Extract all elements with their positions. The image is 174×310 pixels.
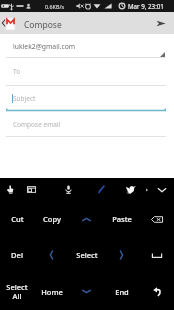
- button[interactable]: Select text: [1, 178, 19, 201]
- button[interactable]: Subject: [0, 86, 174, 111]
- button[interactable]: Copy: [34, 201, 69, 237]
- staticText: End: [115, 287, 129, 297]
- button[interactable]: Backspace: [139, 201, 174, 237]
- button[interactable]: Move right: [104, 237, 139, 273]
- button[interactable]: Move left: [34, 237, 69, 273]
- button[interactable]: Select: [69, 237, 104, 273]
- button[interactable]: Enter: [139, 273, 174, 310]
- staticText: luklek2@gmail.com: [13, 42, 76, 51]
- staticText: Compose email: [13, 120, 61, 129]
- button[interactable]: Navigate up: [0, 12, 7, 34]
- staticText: Select: [76, 250, 98, 260]
- button[interactable]: Handwriting: [91, 178, 109, 201]
- button[interactable]: Space: [139, 237, 174, 273]
- staticText: Cut: [11, 214, 24, 224]
- staticText: Mar 9, 23:01: [128, 2, 164, 10]
- button[interactable]: Select All: [0, 273, 34, 310]
- button[interactable]: Hide keyboard: [152, 178, 171, 201]
- staticText: Compose: [24, 19, 62, 31]
- staticText: Del: [11, 250, 23, 260]
- button[interactable]: Voice input: [59, 178, 77, 201]
- button[interactable]: Paste: [104, 201, 139, 237]
- button[interactable]: End: [104, 273, 139, 310]
- button[interactable]: Page down: [69, 273, 104, 310]
- button[interactable]: Clipboard: [22, 178, 40, 201]
- staticText: Select All: [6, 282, 28, 301]
- button[interactable]: luklek2@gmail.com: [0, 36, 174, 57]
- staticText: 0.6KB/s: [45, 3, 65, 10]
- button[interactable]: Cut: [0, 201, 34, 237]
- button[interactable]: Compose email: [0, 112, 174, 137]
- staticText: Paste: [112, 214, 132, 224]
- button[interactable]: Del: [0, 237, 34, 273]
- button[interactable]: More: [141, 178, 153, 201]
- button[interactable]: Page up: [69, 201, 104, 237]
- button[interactable]: Send: [150, 12, 172, 34]
- staticText: Home: [41, 287, 63, 297]
- staticText: Copy: [43, 214, 61, 224]
- staticText: To: [13, 67, 21, 76]
- button[interactable]: Twitter: [121, 178, 139, 201]
- staticText: Subject: [13, 94, 36, 103]
- button[interactable]: Home: [34, 273, 69, 310]
